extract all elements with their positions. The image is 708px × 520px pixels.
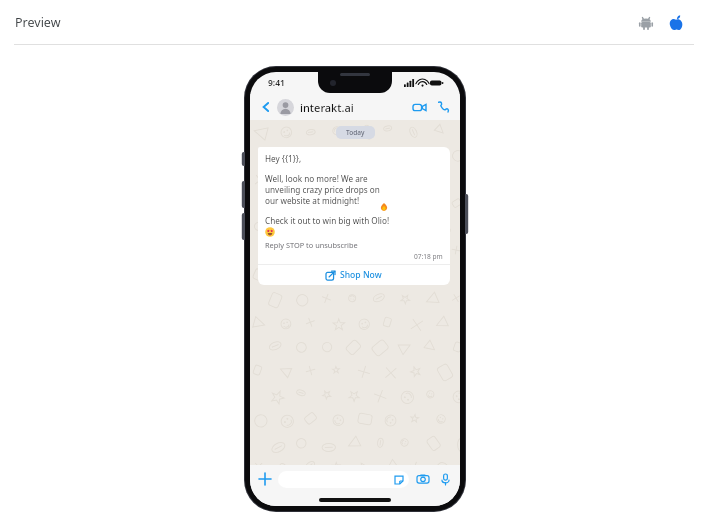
button[interactable]: Voice message <box>437 471 453 487</box>
button[interactable]: Attach <box>257 471 273 487</box>
staticText: Preview <box>15 14 61 31</box>
other: Sticker <box>393 474 404 485</box>
button[interactable]: Shop Now <box>258 265 450 285</box>
button[interactable]: Video call <box>410 98 428 116</box>
staticText: 9:41 <box>268 77 285 89</box>
staticText: Today <box>346 128 365 137</box>
button[interactable]: iOS preview <box>664 11 688 35</box>
staticText: Shop Now <box>340 269 382 281</box>
button[interactable]: Android preview <box>634 11 658 35</box>
staticText: Check it out to win big with Olio! <box>265 215 390 226</box>
button[interactable]: Sticker <box>278 471 409 488</box>
staticText: interakt.ai <box>300 100 354 115</box>
staticText: 07:18 pm <box>414 252 443 261</box>
staticText: Well, look no more! We are unveiling cra… <box>265 173 380 206</box>
button[interactable]: Hey {{1}}, <box>258 147 450 285</box>
button[interactable]: Voice call <box>434 98 452 116</box>
button[interactable]: Camera <box>415 471 431 487</box>
staticText: Reply STOP to unsubscribe <box>265 240 358 250</box>
staticText: Hey {{1}}, <box>265 153 302 164</box>
button[interactable]: Back <box>258 99 274 115</box>
